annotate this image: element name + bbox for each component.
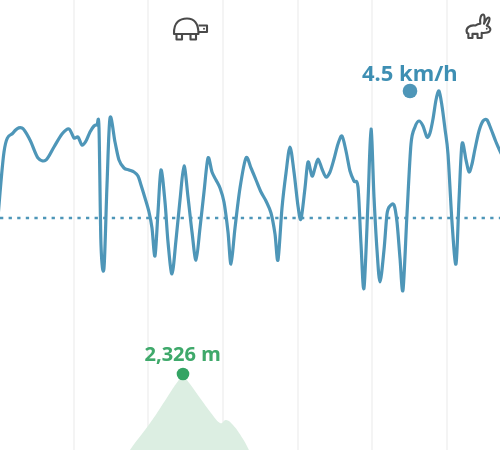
button[interactable]: Minimum speed — [165, 8, 209, 52]
button[interactable]: Maximum speed — [456, 8, 500, 52]
